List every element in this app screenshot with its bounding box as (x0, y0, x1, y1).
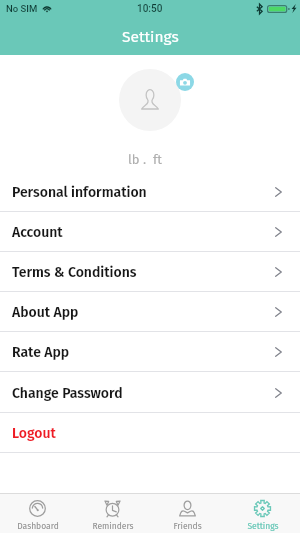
button[interactable]: Rate App (0, 332, 300, 372)
staticText: Reminders (92, 521, 134, 531)
staticText: No SIM (6, 3, 38, 14)
button[interactable]: Logout (0, 413, 300, 453)
staticText: About App (12, 304, 79, 321)
staticText: Change Password (12, 385, 123, 402)
staticText: Settings (122, 28, 179, 47)
button[interactable]: Friends (150, 494, 225, 533)
button[interactable]: Settings (225, 494, 300, 533)
button[interactable]: Terms & Conditions (0, 252, 300, 292)
staticText: Friends (173, 521, 202, 531)
button[interactable]: Reminders (75, 494, 150, 533)
staticText: 10:50 (137, 3, 163, 15)
staticText: Dashboard (17, 521, 59, 531)
button[interactable]: Personal information (0, 172, 300, 212)
staticText: Personal information (12, 184, 147, 201)
staticText: Terms & Conditions (12, 264, 137, 281)
staticText: Settings (247, 521, 279, 531)
button[interactable]: Change profile photo (176, 73, 194, 91)
button[interactable]: Change Password (0, 373, 300, 413)
staticText: Logout (12, 425, 56, 442)
button[interactable]: About App (0, 292, 300, 332)
button[interactable]: Profile photo (119, 69, 181, 131)
button[interactable]: Dashboard (0, 494, 75, 533)
button[interactable]: Account (0, 212, 300, 252)
staticText: Account (12, 224, 63, 241)
staticText: lb . ft (128, 152, 163, 168)
staticText: Rate App (12, 344, 70, 361)
